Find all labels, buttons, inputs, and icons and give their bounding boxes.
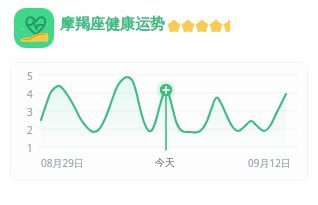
staticText: 摩羯座健康运势 — [60, 15, 165, 34]
staticText: 1 — [27, 141, 33, 155]
button[interactable]: Health fortune — [14, 8, 54, 48]
staticText: 5 — [27, 69, 33, 83]
staticText: 09月12日 — [248, 156, 291, 170]
staticText: 08月29日 — [41, 156, 84, 170]
staticText: 今天 — [155, 156, 175, 169]
button[interactable] — [10, 62, 308, 181]
staticText: 2 — [27, 123, 33, 137]
button[interactable]: Rating 4.5 of 5 — [167, 19, 237, 34]
staticText: 3 — [27, 105, 33, 119]
staticText: 4 — [27, 87, 33, 101]
